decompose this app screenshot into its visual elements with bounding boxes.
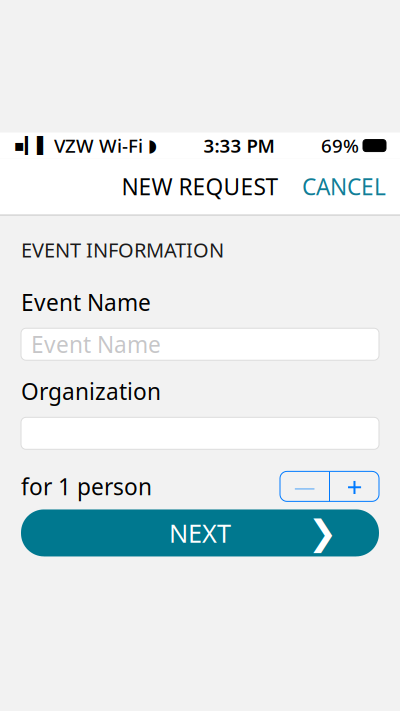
staticText: VZW Wi-Fi	[54, 133, 143, 158]
button[interactable]: Increase	[330, 471, 379, 501]
staticText: ❯	[308, 513, 337, 553]
staticText: +	[346, 468, 362, 505]
staticText: Event Name	[31, 329, 161, 359]
staticText: 3:33 PM	[203, 133, 274, 158]
button[interactable]: CANCEL	[288, 161, 400, 212]
staticText: CANCEL	[302, 171, 386, 202]
staticText: 69%	[321, 133, 359, 158]
button[interactable]: Decrease	[280, 471, 329, 501]
staticText: —	[294, 472, 315, 500]
button[interactable]: NEXT	[21, 509, 379, 556]
staticText: Organization	[21, 376, 161, 406]
staticText: for 1 person	[21, 471, 152, 501]
staticText: EVENT INFORMATION	[21, 237, 224, 263]
staticText: Event Name	[21, 287, 151, 317]
staticText: ▪▎▌	[14, 136, 49, 155]
staticText: NEXT	[169, 516, 231, 550]
staticText: NEW REQUEST	[121, 171, 278, 202]
staticText: ◗	[148, 136, 157, 155]
